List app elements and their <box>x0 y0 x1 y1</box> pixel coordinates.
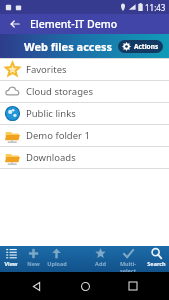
button[interactable]: Public links <box>0 103 169 124</box>
staticText: Cloud storages <box>26 85 93 98</box>
button[interactable]: Demo folder 1 <box>0 125 169 146</box>
staticText: Favorites <box>26 63 67 76</box>
staticText: 11:43 <box>145 2 166 13</box>
staticText: Search <box>147 260 166 267</box>
button[interactable]: Back <box>8 17 22 31</box>
button[interactable]: Recents <box>121 274 145 298</box>
staticText: Web files access <box>24 39 113 54</box>
staticText: Add <box>95 260 106 267</box>
button[interactable]: Multi-select <box>112 246 144 272</box>
staticText: Multi-select <box>112 260 144 272</box>
staticText: New <box>27 260 40 267</box>
button[interactable]: Back <box>24 274 48 298</box>
button[interactable]: Downloads <box>0 147 169 168</box>
button[interactable]: Favorites <box>0 59 169 80</box>
staticText: Upload <box>47 260 67 267</box>
button[interactable]: Actions <box>118 40 163 53</box>
button[interactable]: View <box>0 246 22 272</box>
staticText: Actions <box>134 42 159 51</box>
staticText: Element-IT Demo <box>30 17 118 31</box>
button[interactable]: Home <box>73 274 97 298</box>
button[interactable]: New <box>22 246 45 272</box>
staticText: Downloads <box>26 151 76 164</box>
staticText: Demo folder 1 <box>26 129 90 142</box>
button[interactable]: Add <box>89 246 112 272</box>
staticText: View <box>4 260 18 267</box>
staticText: Public links <box>26 107 76 120</box>
button[interactable]: Upload <box>45 246 68 272</box>
button[interactable]: Search <box>144 246 169 272</box>
button[interactable]: Cloud storages <box>0 81 169 102</box>
